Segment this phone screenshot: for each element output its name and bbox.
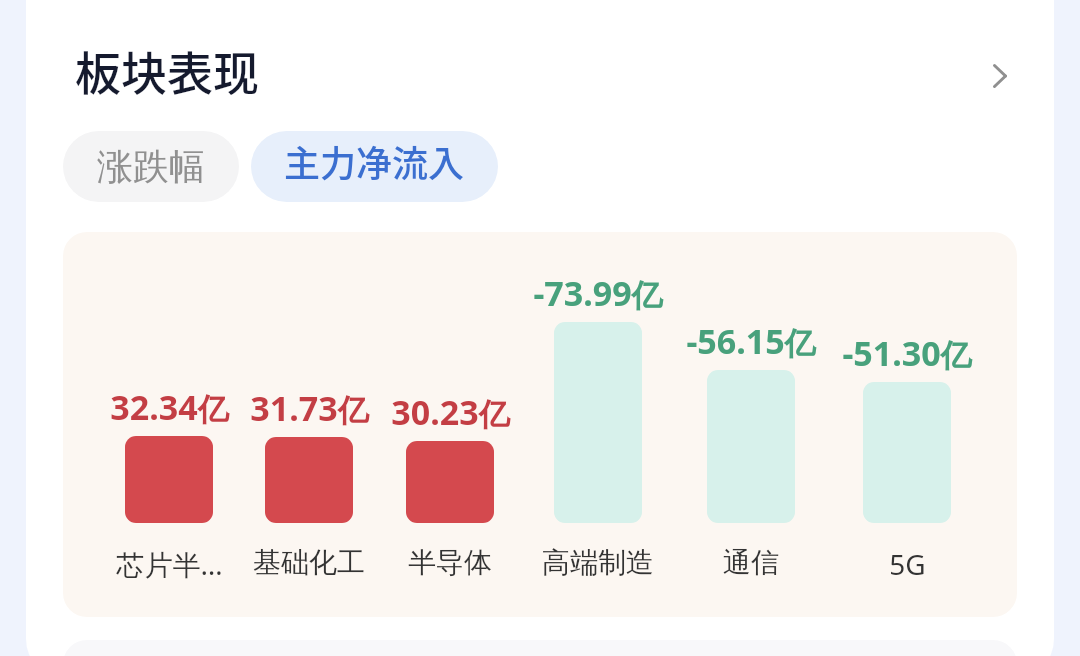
staticText: 半导体 bbox=[408, 545, 492, 580]
button[interactable]: 主力净流入 bbox=[251, 131, 498, 202]
other: More sector performance bbox=[976, 52, 1024, 100]
staticText: -56.15亿 bbox=[686, 318, 816, 364]
staticText: 主力净流入 bbox=[284, 135, 465, 187]
button[interactable]: 板块表现 bbox=[26, 31, 1054, 121]
staticText: 高端制造 bbox=[542, 545, 654, 580]
staticText: 30.23亿 bbox=[391, 389, 510, 435]
staticText: 芯片半… bbox=[116, 545, 223, 583]
staticText: 5G bbox=[889, 545, 926, 583]
staticText: -51.30亿 bbox=[842, 330, 972, 376]
staticText: -73.99亿 bbox=[533, 270, 663, 316]
staticText: 32.34亿 bbox=[110, 384, 229, 430]
staticText: 通信 bbox=[723, 545, 779, 580]
staticText: 涨跌幅 bbox=[97, 144, 205, 189]
staticText: 31.73亿 bbox=[250, 385, 369, 431]
button[interactable]: 涨跌幅 bbox=[63, 131, 239, 202]
staticText: 板块表现 bbox=[75, 37, 259, 104]
staticText: 基础化工 bbox=[253, 545, 365, 580]
button[interactable] bbox=[63, 232, 1017, 617]
